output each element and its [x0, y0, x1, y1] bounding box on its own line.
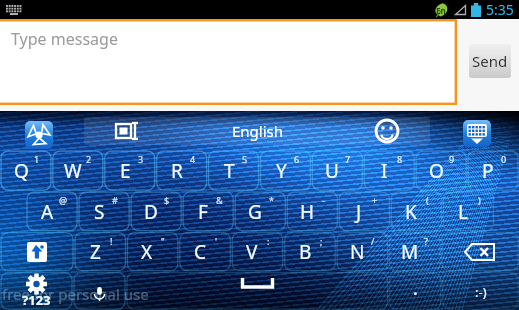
staticText: + — [372, 194, 378, 206]
staticText: $ — [164, 194, 170, 206]
staticText: T — [224, 158, 235, 184]
staticText: 6 — [294, 153, 300, 165]
staticText: A — [41, 199, 54, 225]
button[interactable]: L — [442, 191, 494, 232]
button[interactable]: T — [208, 150, 260, 191]
staticText: - — [322, 194, 325, 206]
button[interactable]: E — [104, 150, 156, 191]
button[interactable]: G — [234, 191, 286, 232]
staticText: @ — [59, 194, 68, 206]
staticText: F — [198, 199, 208, 225]
staticText: :-) — [475, 283, 487, 301]
staticText: 3 — [138, 153, 144, 165]
button[interactable]: P — [467, 150, 519, 191]
button[interactable]: H — [286, 191, 338, 232]
staticText: 7 — [345, 153, 351, 165]
staticText: . — [413, 276, 418, 301]
staticText: W — [64, 158, 82, 184]
staticText: G — [248, 199, 262, 225]
staticText: V — [246, 239, 258, 265]
button[interactable]: Q — [0, 150, 52, 191]
button[interactable]: C — [179, 232, 231, 272]
staticText: S — [94, 199, 105, 225]
staticText: U — [325, 158, 339, 184]
button[interactable]: V — [231, 232, 283, 272]
button[interactable]: S — [78, 191, 130, 232]
staticText: M — [401, 239, 419, 265]
staticText: 5 — [242, 153, 248, 165]
button[interactable]: M — [389, 232, 441, 272]
staticText: # — [112, 194, 118, 206]
staticText: R — [171, 158, 183, 184]
button[interactable]: Symbols — [0, 272, 73, 310]
staticText: 0 — [501, 153, 507, 165]
staticText: C — [194, 239, 207, 265]
button[interactable]: W — [52, 150, 104, 191]
button[interactable]: J — [338, 191, 390, 232]
button[interactable]: X — [126, 232, 178, 272]
button[interactable]: Delete — [441, 232, 519, 272]
staticText: 1 — [34, 153, 40, 165]
staticText: ? — [424, 235, 428, 247]
button[interactable]: Y — [260, 150, 312, 191]
staticText: 2 — [86, 153, 92, 165]
staticText: X — [141, 239, 153, 265]
staticText: P — [482, 158, 494, 184]
staticText: ?123 — [22, 291, 51, 309]
button[interactable]: Send — [469, 44, 511, 78]
button[interactable]: Voice input — [73, 272, 126, 310]
button[interactable]: Emoji — [344, 117, 430, 145]
staticText: 8 — [397, 153, 403, 165]
button[interactable]: N — [336, 232, 388, 272]
button[interactable]: Shift — [0, 232, 74, 272]
button[interactable]: F — [182, 191, 234, 232]
staticText: free for personal use — [2, 284, 149, 304]
staticText: : — [267, 235, 270, 247]
staticText: En — [436, 5, 446, 16]
staticText: Type message — [11, 28, 118, 50]
staticText: ( — [426, 194, 429, 206]
staticText: K — [405, 199, 417, 225]
staticText: 5:35 — [486, 0, 514, 19]
staticText: ! — [110, 235, 113, 247]
staticText: E — [120, 158, 131, 184]
button[interactable]: Keyboard settings — [25, 121, 53, 149]
button[interactable]: Hide keyboard — [463, 120, 491, 147]
staticText: & — [216, 194, 223, 206]
staticText: / — [371, 235, 375, 247]
staticText: ' — [215, 235, 218, 247]
button[interactable]: Space — [126, 272, 389, 310]
staticText: O — [429, 158, 444, 184]
staticText: Send — [472, 51, 508, 71]
button[interactable]: I — [363, 150, 415, 191]
staticText: L — [458, 199, 468, 225]
staticText: * — [269, 194, 274, 206]
staticText: B — [299, 239, 312, 265]
staticText: ; — [320, 235, 323, 247]
button[interactable]: Z — [74, 232, 126, 272]
staticText: ) — [478, 194, 481, 206]
button[interactable]: Type message — [0, 19, 457, 105]
staticText: J — [356, 199, 362, 225]
button[interactable]: U — [311, 150, 363, 191]
button[interactable]: K — [390, 191, 442, 232]
button[interactable]: A — [26, 191, 78, 232]
staticText: Y — [276, 158, 287, 184]
button[interactable]: D — [130, 191, 182, 232]
staticText: " — [161, 235, 165, 247]
button[interactable]: English — [172, 117, 344, 145]
staticText: N — [350, 239, 365, 265]
button[interactable]: Keyboard layout — [84, 117, 172, 145]
staticText: 4 — [190, 153, 196, 165]
staticText: I — [381, 158, 388, 184]
staticText: D — [144, 199, 158, 225]
staticText: Q — [14, 158, 29, 184]
button[interactable]: B — [284, 232, 336, 272]
staticText: H — [300, 199, 315, 225]
button[interactable]: O — [415, 150, 467, 191]
button[interactable]: R — [156, 150, 208, 191]
staticText: English — [232, 121, 284, 141]
staticText: Z — [90, 239, 101, 265]
staticText: 9 — [449, 153, 455, 165]
